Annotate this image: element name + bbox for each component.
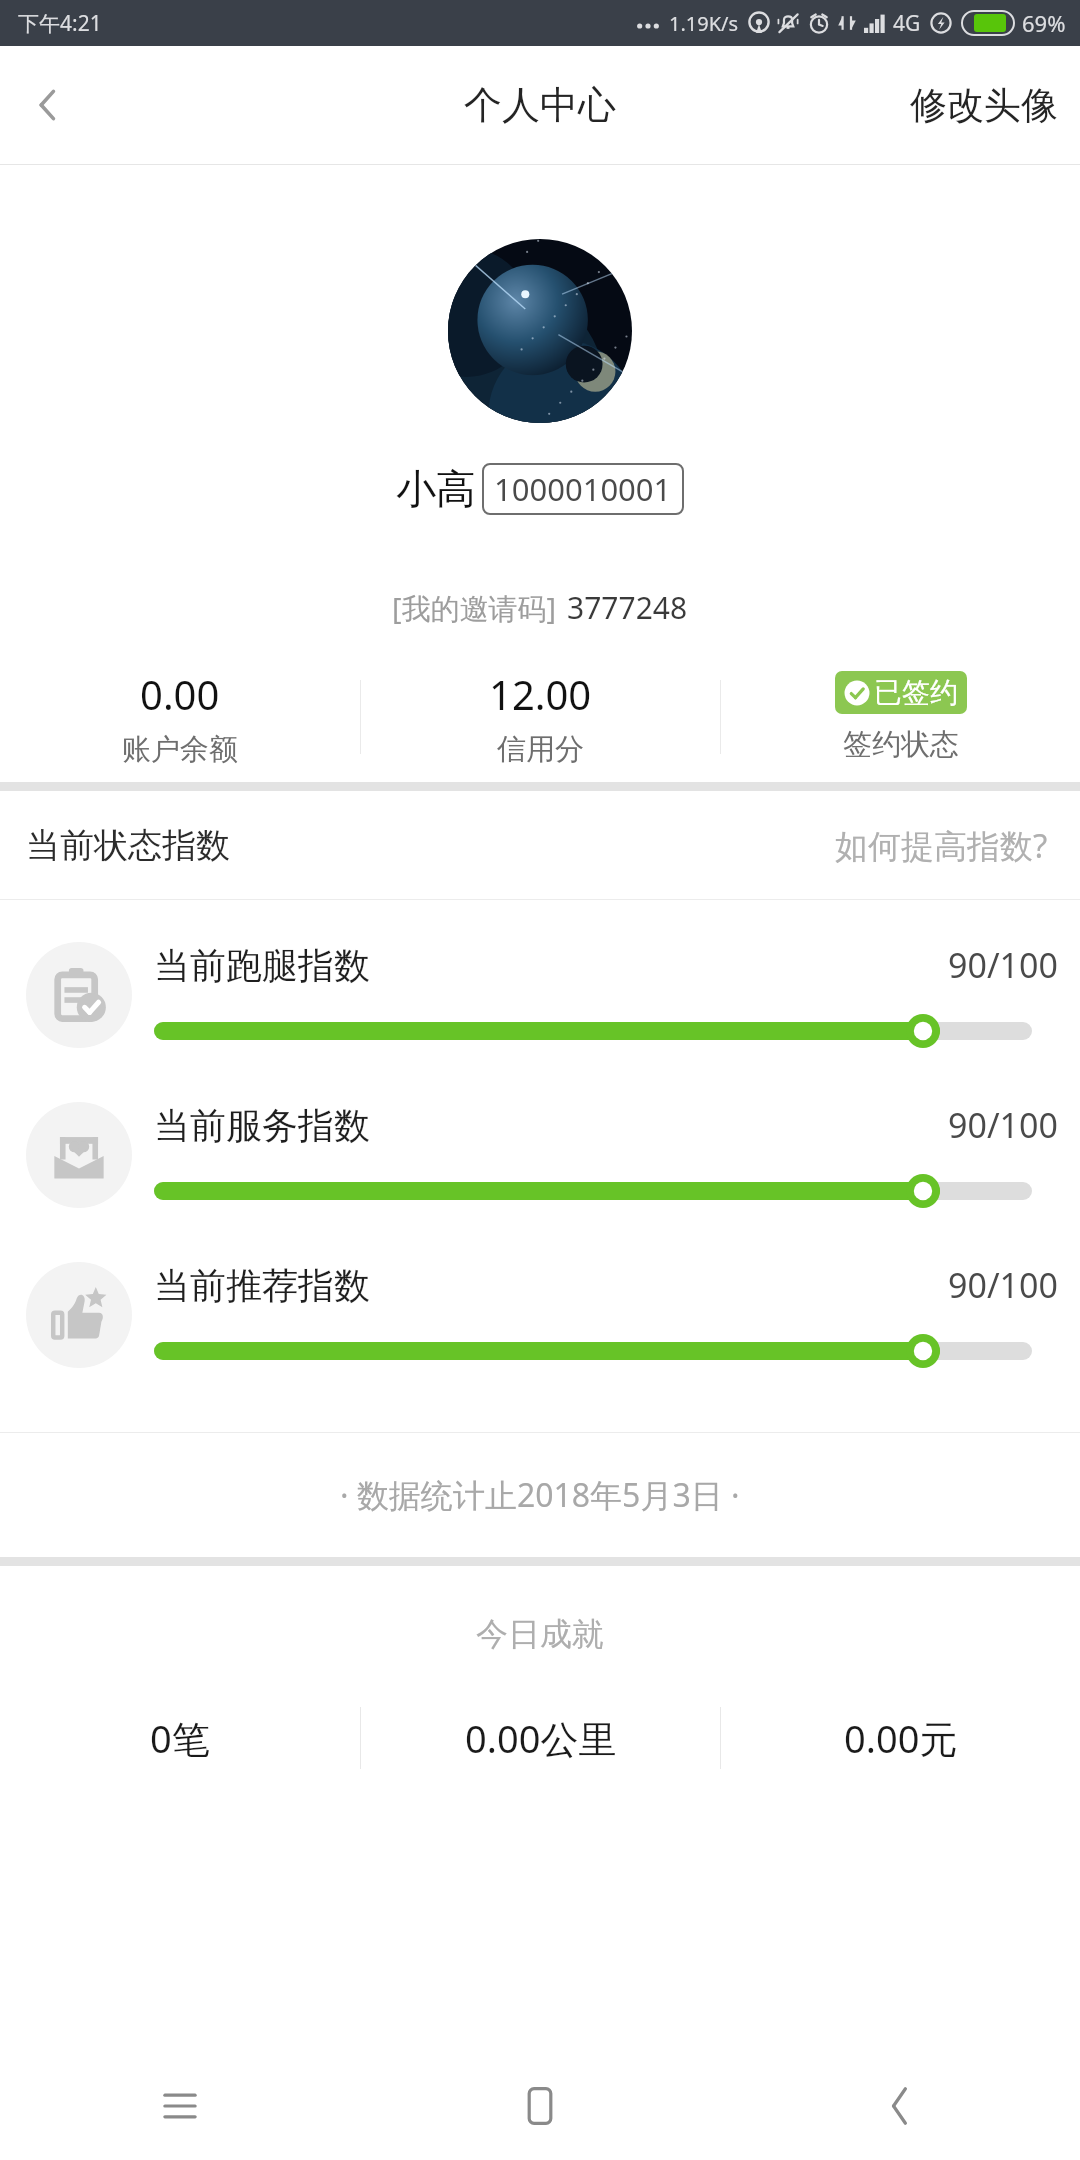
button[interactable]: 当前推荐指数 <box>0 1262 1080 1368</box>
button[interactable]: 0.00公里 <box>361 1700 720 1776</box>
staticText: 当前服务指数 <box>154 1103 370 1148</box>
button[interactable]: 12.00 <box>361 658 720 776</box>
button[interactable]: Back <box>0 57 96 153</box>
button[interactable]: Menu <box>0 2052 360 2160</box>
staticText: 0笔 <box>150 1712 210 1764</box>
staticText: 账户余额 <box>122 731 238 768</box>
staticText: 0.00公里 <box>465 1712 617 1764</box>
staticText: 90/100 <box>948 1102 1058 1148</box>
staticText: 3777248 <box>567 587 688 628</box>
button[interactable]: 当前服务指数 <box>0 1102 1080 1208</box>
staticText: 已签约 <box>874 675 958 710</box>
staticText: 小高 <box>396 464 476 514</box>
staticText: 69% <box>1022 8 1066 38</box>
staticText: 90/100 <box>948 942 1058 988</box>
staticText: [我的邀请码] <box>392 588 557 628</box>
button[interactable]: 修改头像 <box>888 56 1080 155</box>
button[interactable]: Home <box>360 2052 720 2160</box>
button[interactable]: 0笔 <box>0 1700 360 1776</box>
staticText: 个人中心 <box>464 81 616 129</box>
staticText: 当前跑腿指数 <box>154 943 370 988</box>
staticText: 0.00 <box>140 667 220 721</box>
staticText: 1000010001 <box>494 468 672 510</box>
staticText: 今日成就 <box>476 1614 604 1654</box>
button[interactable]: 当前跑腿指数 <box>0 942 1080 1048</box>
button[interactable]: 如何提高指数? <box>829 817 1054 874</box>
staticText: 0.00元 <box>844 1712 958 1764</box>
button[interactable]: 0.00元 <box>721 1700 1080 1776</box>
staticText: 当前状态指数 <box>26 824 230 867</box>
staticText: 信用分 <box>497 731 584 768</box>
button[interactable]: [我的邀请码] <box>392 587 688 628</box>
staticText: 当前推荐指数 <box>154 1263 370 1308</box>
staticText: 如何提高指数? <box>835 823 1048 868</box>
staticText: 1.19K/s <box>669 10 739 37</box>
staticText: · 数据统计止2018年5月3日 · <box>340 1473 740 1517</box>
button[interactable]: Back <box>720 2052 1080 2160</box>
staticText: 下午4:21 <box>18 9 102 38</box>
button[interactable]: 0.00 <box>0 658 360 776</box>
staticText: 签约状态 <box>843 726 959 763</box>
staticText: 12.00 <box>489 667 592 721</box>
staticText: 修改头像 <box>910 82 1058 129</box>
button[interactable]: 已签约 <box>721 658 1080 776</box>
staticText: 4G <box>893 9 921 38</box>
staticText: 90/100 <box>948 1262 1058 1308</box>
